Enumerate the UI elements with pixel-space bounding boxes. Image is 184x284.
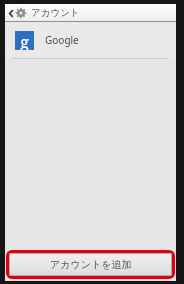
staticText: Google [45, 33, 79, 47]
button[interactable]: Back [8, 8, 14, 19]
staticText: アカウント [31, 7, 80, 19]
staticText: g [20, 31, 29, 50]
button[interactable]: アカウントを追加 [9, 253, 172, 276]
staticText: アカウントを追加 [50, 258, 132, 271]
button[interactable]: g [5, 22, 176, 59]
